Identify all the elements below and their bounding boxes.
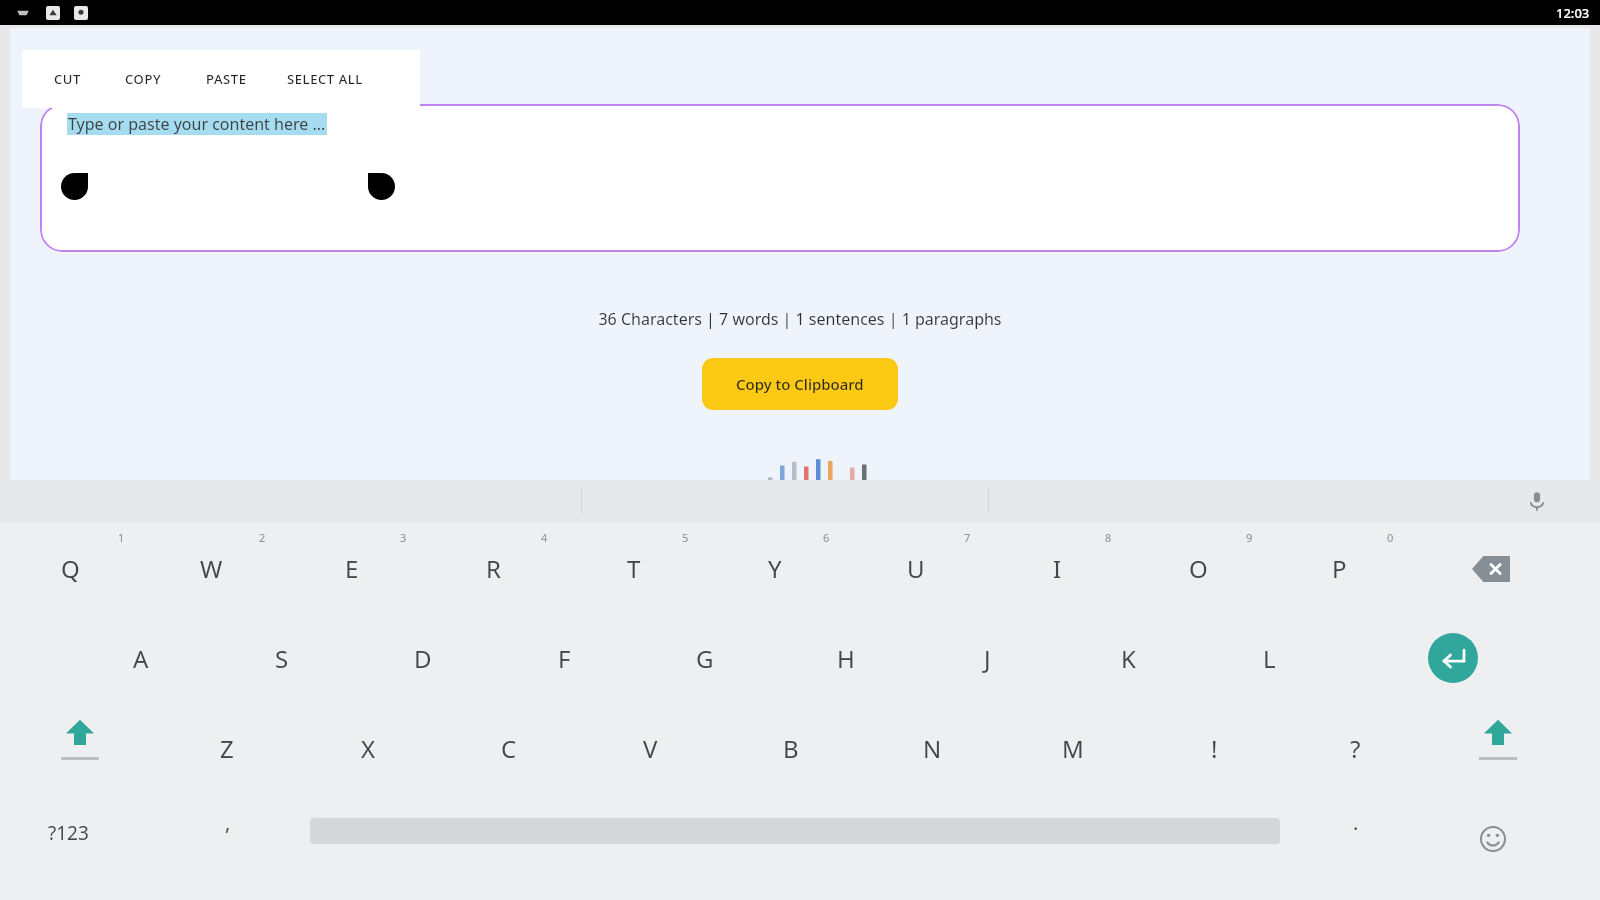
staticText: Q (61, 552, 80, 585)
staticText: R (486, 552, 501, 585)
staticText: 36 Characters | 7 words | 1 sentences | … (10, 308, 1590, 330)
button[interactable]: Q (12, 526, 128, 610)
staticText: Z (220, 732, 234, 765)
button[interactable]: SELECT ALL (283, 64, 367, 94)
staticText: 6 (823, 530, 830, 545)
staticText: H (837, 642, 855, 675)
staticText: D (414, 642, 432, 675)
staticText: ? (1350, 732, 1361, 765)
staticText: L (1263, 642, 1276, 675)
button[interactable]: ? (1297, 706, 1413, 790)
staticText: S (275, 642, 289, 675)
button[interactable]: Shift (1470, 718, 1526, 780)
staticText: J (984, 642, 991, 675)
button[interactable]: C (451, 706, 567, 790)
staticText: 4 (541, 530, 548, 545)
button[interactable]: G (647, 616, 763, 700)
staticText: C (501, 732, 517, 765)
button[interactable]: B (733, 706, 849, 790)
staticText: O (1189, 552, 1208, 585)
button[interactable]: Copy to Clipboard (702, 358, 898, 410)
staticText: ?123 (48, 820, 89, 846)
button[interactable]: T (576, 526, 692, 610)
button[interactable]: ?123 (40, 814, 97, 852)
staticText: T (627, 552, 641, 585)
staticText: F (558, 642, 571, 675)
button[interactable]: D (365, 616, 481, 700)
button[interactable]: Type or paste your content here ... (40, 104, 1520, 252)
staticText: CUT (54, 70, 81, 88)
button[interactable]: Enter (1425, 630, 1481, 686)
staticText: G (696, 642, 714, 675)
button[interactable]: Y (717, 526, 833, 610)
button[interactable]: , (170, 780, 286, 864)
button[interactable]: PASTE (202, 64, 251, 94)
button[interactable]: Voice input (1522, 486, 1552, 516)
button[interactable]: E (294, 526, 410, 610)
staticText: SELECT ALL (287, 70, 363, 88)
staticText: M (1062, 732, 1084, 765)
staticText: , (225, 809, 231, 836)
staticText: 12:03 (1556, 4, 1590, 22)
button[interactable]: W (153, 526, 269, 610)
staticText: W (200, 552, 223, 585)
staticText: U (907, 552, 925, 585)
button[interactable]: X (310, 706, 426, 790)
button[interactable]: . (1298, 780, 1414, 864)
button[interactable]: P (1281, 526, 1397, 610)
button[interactable]: Backspace (1465, 550, 1517, 588)
button[interactable]: K (1070, 616, 1186, 700)
staticText: K (1121, 642, 1136, 675)
staticText: ! (1211, 732, 1218, 765)
staticText: 2 (259, 530, 266, 545)
staticText: E (345, 552, 359, 585)
button[interactable]: N (874, 706, 990, 790)
button[interactable]: Emoji (1472, 818, 1514, 860)
staticText: P (1332, 552, 1347, 585)
button[interactable]: L (1211, 616, 1327, 700)
button[interactable]: COPY (121, 64, 166, 94)
staticText: I (1053, 552, 1062, 585)
staticText: Y (768, 552, 782, 585)
staticText: B (783, 732, 799, 765)
staticText: 8 (1105, 530, 1112, 545)
staticText: X (361, 732, 376, 765)
button[interactable]: CUT (50, 64, 85, 94)
button[interactable]: J (929, 616, 1045, 700)
staticText: COPY (125, 70, 162, 88)
button[interactable]: I (999, 526, 1115, 610)
staticText: A (133, 642, 149, 675)
button[interactable]: Z (169, 706, 285, 790)
button[interactable]: ! (1156, 706, 1272, 790)
button[interactable]: R (435, 526, 551, 610)
staticText: 0 (1387, 530, 1394, 545)
button[interactable]: U (858, 526, 974, 610)
staticText: Copy to Clipboard (736, 374, 864, 394)
staticText: 1 (118, 530, 125, 545)
button[interactable]: V (592, 706, 708, 790)
button[interactable]: O (1140, 526, 1256, 610)
staticText: Type or paste your content here ... (68, 113, 326, 135)
staticText: 9 (1246, 530, 1253, 545)
button[interactable]: F (506, 616, 622, 700)
button[interactable]: Shift (52, 718, 108, 780)
staticText: V (643, 732, 658, 765)
staticText: 5 (682, 530, 689, 545)
staticText: PASTE (206, 70, 247, 88)
staticText: N (923, 732, 942, 765)
button[interactable]: M (1015, 706, 1131, 790)
button[interactable]: H (788, 616, 904, 700)
staticText: 3 (400, 530, 407, 545)
staticText: . (1353, 809, 1359, 836)
button[interactable]: A (83, 616, 199, 700)
button[interactable]: S (224, 616, 340, 700)
staticText: 7 (964, 530, 971, 545)
